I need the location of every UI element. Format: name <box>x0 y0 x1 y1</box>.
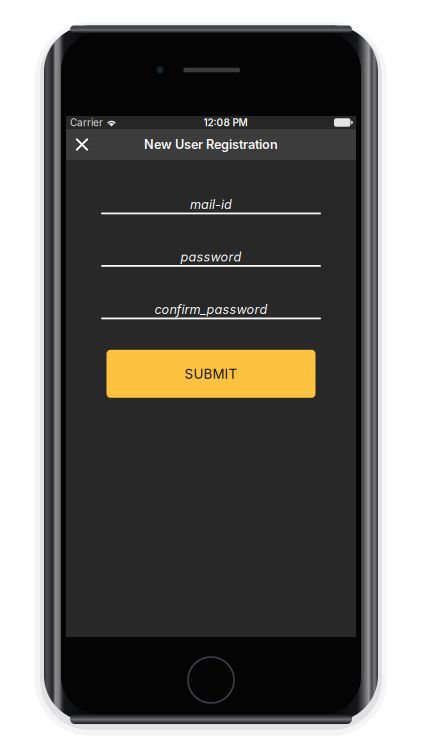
button[interactable]: SUBMIT <box>106 350 315 398</box>
staticText: New User Registration <box>144 137 278 152</box>
staticText: Carrier <box>70 116 103 129</box>
button[interactable]: Close <box>66 129 98 160</box>
staticText: mail-id <box>190 197 232 212</box>
staticText: password <box>180 249 241 265</box>
staticText: 12:08 PM <box>203 116 247 129</box>
staticText: SUBMIT <box>184 366 237 382</box>
staticText: confirm_password <box>154 302 267 317</box>
